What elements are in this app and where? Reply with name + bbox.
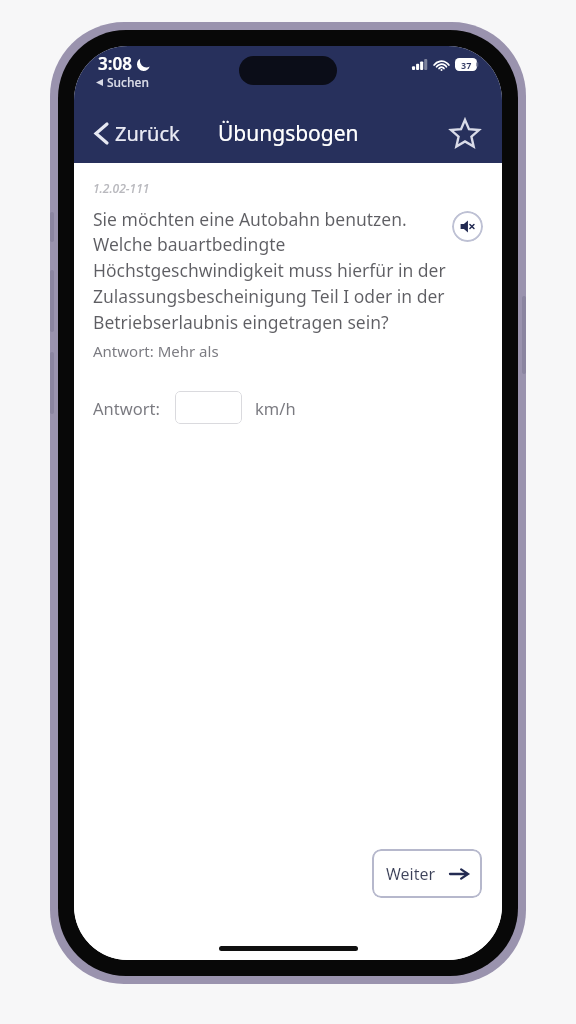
button[interactable]: Favorit	[442, 111, 488, 157]
staticText: Antwort:	[93, 397, 160, 419]
staticText: 3:08	[98, 52, 132, 75]
staticText: Sie möchten eine Autobahn benutzen. Welc…	[93, 207, 446, 335]
staticText: km/h	[255, 397, 296, 419]
button[interactable]: Weiter	[372, 849, 482, 898]
staticText: Antwort: Mehr als	[93, 341, 219, 361]
button[interactable]: Vorlesen stumm	[452, 211, 483, 242]
button[interactable]	[175, 391, 242, 424]
staticText: Zurück	[115, 120, 180, 147]
button[interactable]: Zurück	[86, 112, 190, 155]
staticText: 1.2.02-111	[93, 180, 150, 196]
staticText: 37	[461, 59, 472, 71]
staticText: Suchen	[107, 74, 149, 90]
staticText: Übungsbogen	[218, 119, 359, 148]
staticText: Weiter	[386, 863, 436, 885]
